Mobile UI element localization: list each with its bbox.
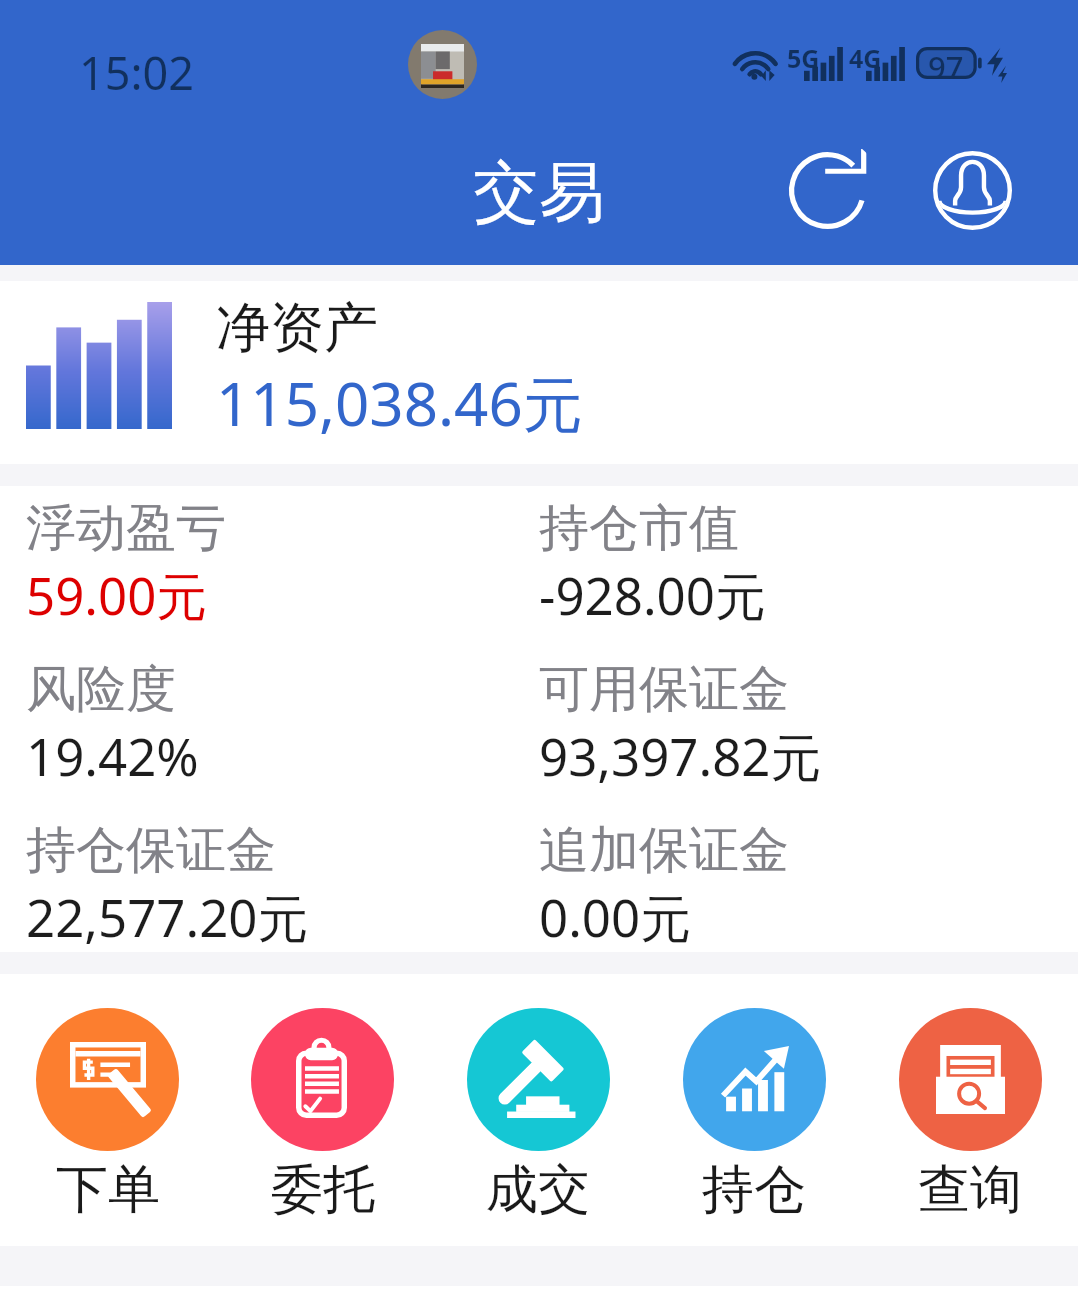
staticText: 持仓: [702, 1157, 806, 1223]
staticText: 下单: [56, 1157, 160, 1223]
staticText: 可用保证金: [539, 658, 789, 721]
staticText: 0.00元: [539, 882, 692, 952]
staticText: 净资产: [216, 294, 378, 362]
staticText: 59.00元: [26, 560, 208, 630]
button[interactable]: 持仓: [646, 974, 862, 1223]
staticText: 93,397.82元: [539, 721, 822, 791]
staticText: 浮动盈亏: [26, 497, 226, 560]
staticText: 4G: [849, 41, 882, 75]
button[interactable]: 净资产: [0, 281, 1078, 464]
staticText: 持仓市值: [539, 497, 739, 560]
staticText: 查询: [918, 1157, 1022, 1223]
staticText: 115,038.46元: [216, 362, 583, 444]
button[interactable]: 成交: [430, 974, 646, 1223]
button[interactable]: 查询: [862, 974, 1078, 1223]
button[interactable]: Account: [918, 136, 1026, 244]
staticText: 19.42%: [26, 721, 199, 790]
staticText: 5G: [787, 41, 820, 75]
staticText: 委托: [271, 1157, 375, 1223]
staticText: 交易: [473, 151, 605, 234]
staticText: 15:02: [79, 42, 195, 103]
staticText: 97: [928, 46, 964, 88]
button[interactable]: 委托: [215, 974, 430, 1223]
staticText: 22,577.20元: [26, 882, 309, 952]
staticText: 追加保证金: [539, 819, 789, 882]
staticText: 风险度: [26, 658, 176, 721]
button[interactable]: Refresh: [773, 136, 881, 244]
staticText: 成交: [486, 1157, 590, 1223]
staticText: -928.00元: [539, 560, 766, 630]
staticText: 持仓保证金: [26, 819, 276, 882]
button[interactable]: 下单: [0, 974, 215, 1223]
